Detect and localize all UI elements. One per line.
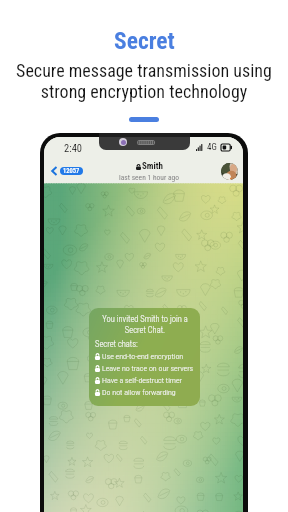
staticText: 2:40	[64, 142, 83, 154]
staticText: last seen 1 hour ago	[119, 173, 179, 182]
staticText: Have a self-destruct timer	[102, 376, 183, 385]
button[interactable]: Profile picture	[221, 163, 238, 180]
staticText: Secure message transmission using strong…	[16, 60, 272, 103]
staticText: Secret chats:	[95, 339, 138, 349]
staticText: Use end-to-end encryption	[102, 352, 184, 361]
staticText: Do not allow forwarding	[102, 388, 176, 397]
staticText: Leave no trace on our servers	[102, 364, 194, 373]
staticText: Smith	[142, 161, 163, 172]
staticText: You invited Smith to join a Secret Chat.	[95, 314, 195, 335]
button[interactable]: Back	[48, 163, 85, 179]
staticText: Secret	[114, 27, 175, 55]
staticText: 4G	[207, 142, 217, 153]
staticText: 12057	[63, 167, 80, 175]
